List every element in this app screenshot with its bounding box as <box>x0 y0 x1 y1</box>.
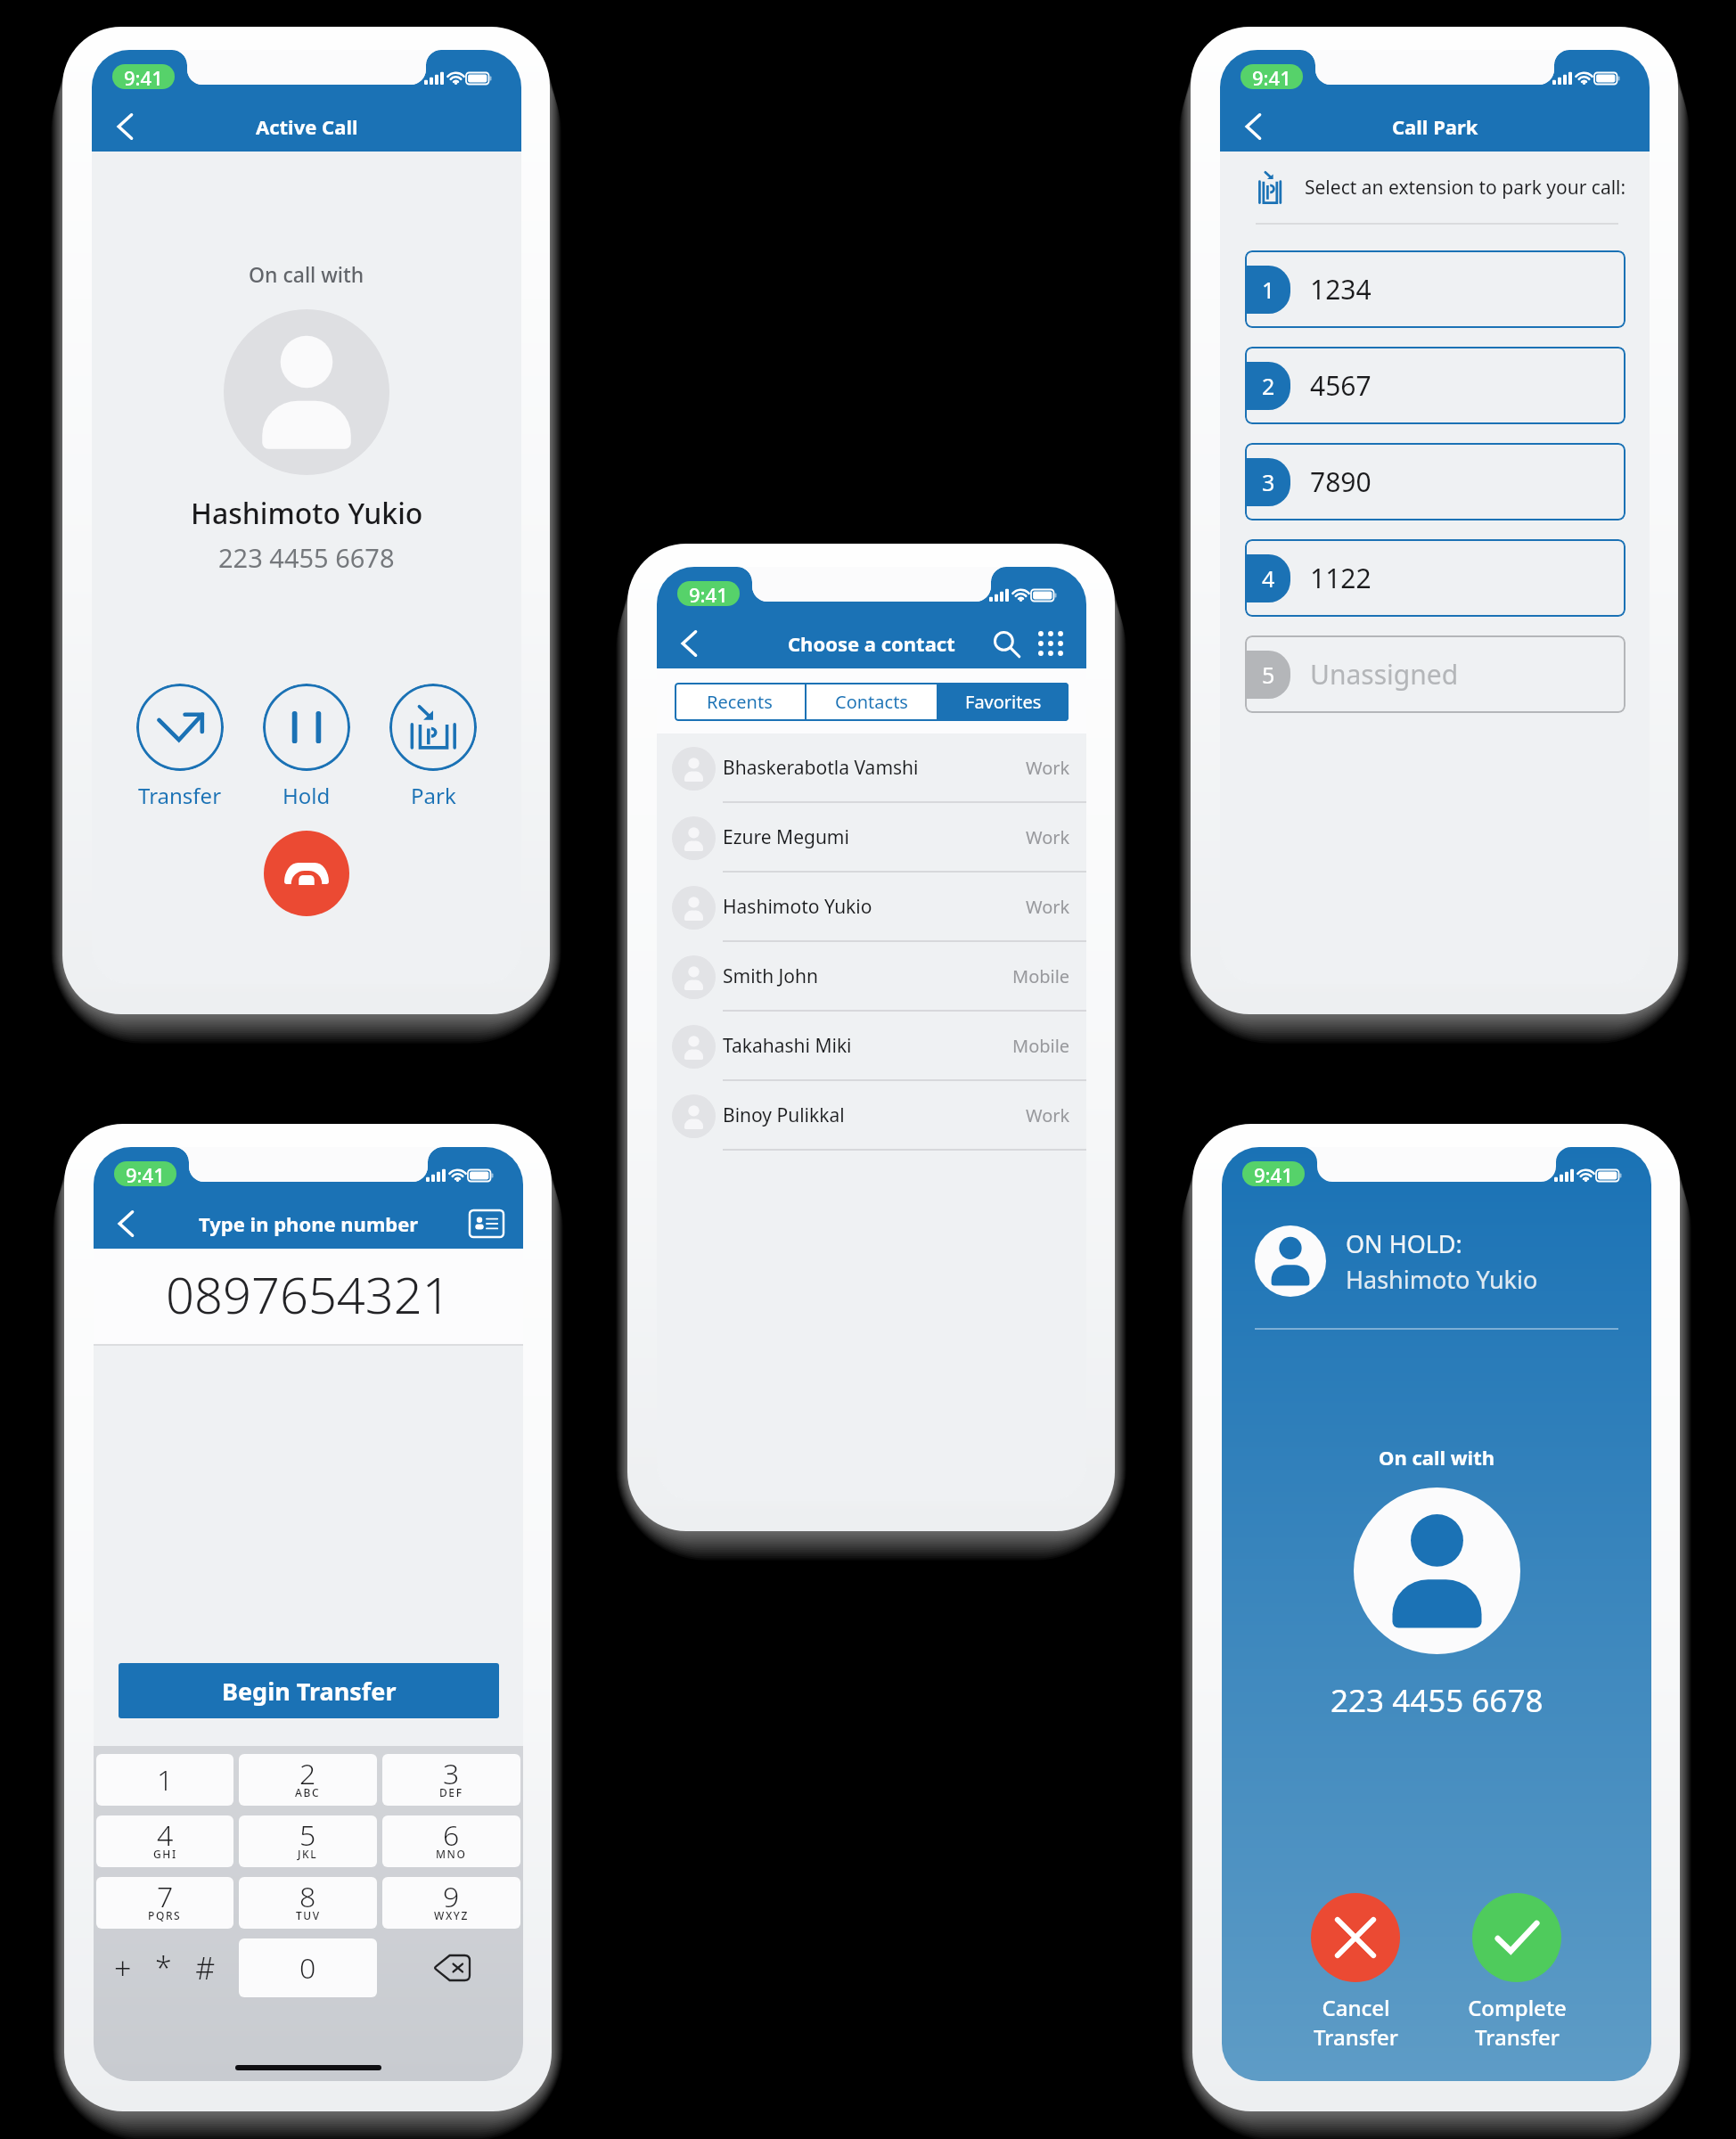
button[interactable]: 4 <box>1245 539 1625 617</box>
staticText: JKL <box>298 1847 318 1861</box>
button[interactable]: 0 <box>239 1938 377 1997</box>
staticText: Begin Transfer <box>222 1675 397 1708</box>
button[interactable]: Cancel <box>1293 1893 1418 2052</box>
staticText: 0 <box>299 1948 316 1987</box>
staticText: 223 4455 6678 <box>218 540 395 575</box>
staticText: 2 <box>299 1754 316 1793</box>
staticText: GHI <box>153 1847 177 1861</box>
staticText: Cancel <box>1322 1993 1390 2022</box>
staticText: 4567 <box>1310 367 1372 404</box>
button[interactable]: Hashimoto Yukio <box>657 873 1086 942</box>
button[interactable]: Binoy Pulikkal <box>657 1081 1086 1151</box>
staticText: 1 <box>157 1760 174 1799</box>
staticText: Binoy Pulikkal <box>723 1102 1026 1128</box>
staticText: Work <box>1026 756 1070 780</box>
button[interactable]: 2 <box>1245 347 1625 424</box>
staticText: Smith John <box>723 963 1012 989</box>
button[interactable]: 9 <box>382 1877 520 1929</box>
button[interactable]: 1 <box>96 1754 233 1806</box>
staticText: Type in phone number <box>199 1210 419 1237</box>
button[interactable]: Contacts <box>466 1203 507 1244</box>
staticText: Bhaskerabotla Vamshi <box>723 755 1026 781</box>
staticText: 8 <box>299 1877 316 1916</box>
staticText: Work <box>1026 825 1070 849</box>
staticText: Hashimoto Yukio <box>723 894 1026 920</box>
staticText: 9:41 <box>1254 1161 1293 1186</box>
button[interactable]: Back <box>1232 105 1275 148</box>
staticText: Complete <box>1468 1993 1567 2022</box>
staticText: Choose a contact <box>788 630 955 657</box>
staticText: Select an extension to park your call: <box>1305 175 1626 201</box>
staticText: Transfer <box>138 781 222 810</box>
staticText: Mobile <box>1012 1034 1070 1058</box>
staticText: Takahashi Miki <box>723 1033 1012 1059</box>
staticText: 7890 <box>1310 463 1372 500</box>
button[interactable]: Search <box>987 624 1026 663</box>
button[interactable]: Symbols <box>94 1938 236 1997</box>
staticText: Park <box>411 781 456 810</box>
staticText: + * # <box>114 1947 216 1988</box>
staticText: 9:41 <box>124 64 163 89</box>
button[interactable]: 3 <box>382 1754 520 1806</box>
staticText: Transfer <box>1314 2022 1398 2052</box>
staticText: Call Park <box>1392 113 1478 140</box>
button[interactable]: Bhaskerabotla Vamshi <box>657 733 1086 803</box>
button[interactable]: 4 <box>96 1815 233 1867</box>
button[interactable]: Ezure Megumi <box>657 803 1086 873</box>
staticText: 4 <box>157 1815 174 1855</box>
button[interactable]: Hold <box>263 684 350 810</box>
staticText: ABC <box>295 1785 321 1799</box>
button[interactable]: Favorites <box>938 683 1069 721</box>
button[interactable]: Takahashi Miki <box>657 1012 1086 1081</box>
staticText: MNO <box>436 1847 467 1861</box>
button[interactable]: Back <box>104 105 147 148</box>
staticText: Hashimoto Yukio <box>1346 1263 1538 1296</box>
staticText: DEF <box>439 1785 463 1799</box>
button[interactable]: Park <box>389 684 477 810</box>
button[interactable]: 7 <box>96 1877 233 1929</box>
staticText: TUV <box>296 1908 321 1922</box>
staticText: 1122 <box>1310 560 1372 596</box>
staticText: 9:41 <box>689 581 728 606</box>
staticText: Unassigned <box>1310 656 1459 693</box>
staticText: 9 <box>443 1877 460 1916</box>
staticText: Work <box>1026 1103 1070 1127</box>
button[interactable]: Complete <box>1454 1893 1579 2052</box>
staticText: Active Call <box>256 113 358 140</box>
staticText: Favorites <box>965 690 1042 714</box>
button[interactable]: Contacts <box>807 683 937 721</box>
button[interactable]: Back <box>106 1203 147 1244</box>
staticText: 4 <box>1262 563 1275 594</box>
button[interactable]: 5 <box>1245 635 1625 713</box>
button[interactable]: 5 <box>239 1815 377 1867</box>
staticText: Mobile <box>1012 964 1070 988</box>
button[interactable]: 8 <box>239 1877 377 1929</box>
staticText: Ezure Megumi <box>723 824 1026 850</box>
staticText: 5 <box>1262 660 1275 690</box>
staticText: 1 <box>1262 275 1275 305</box>
button[interactable]: Back <box>669 623 710 664</box>
staticText: WXYZ <box>434 1908 469 1922</box>
button[interactable]: 6 <box>382 1815 520 1867</box>
staticText: 9:41 <box>1252 64 1291 89</box>
button[interactable]: Dialpad <box>1031 624 1070 663</box>
button[interactable]: Begin Transfer <box>119 1663 499 1718</box>
button[interactable]: 3 <box>1245 443 1625 520</box>
button[interactable]: Recents <box>675 683 805 721</box>
staticText: On call with <box>1379 1444 1495 1471</box>
button[interactable]: 2 <box>239 1754 377 1806</box>
staticText: Work <box>1026 895 1070 919</box>
staticText: PQRS <box>148 1908 182 1922</box>
button[interactable]: Smith John <box>657 942 1086 1012</box>
staticText: 2 <box>1262 371 1275 401</box>
button[interactable]: 1 <box>1245 250 1625 328</box>
button[interactable]: End call <box>264 831 349 916</box>
button[interactable]: Transfer <box>136 684 224 810</box>
staticText: Hold <box>283 781 331 810</box>
button[interactable]: Backspace <box>380 1938 523 1997</box>
staticText: On call with <box>249 260 364 288</box>
staticText: 7 <box>157 1877 174 1916</box>
staticText: 0897654321 <box>166 1260 451 1328</box>
staticText: 3 <box>1262 467 1275 497</box>
staticText: 3 <box>443 1754 460 1793</box>
